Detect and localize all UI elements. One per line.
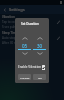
button[interactable]: Decrease	[18, 50, 31, 57]
button[interactable]: Edit	[54, 18, 62, 26]
staticText: 5 sec pulse	[2, 25, 18, 29]
button[interactable]: Edit	[54, 34, 62, 42]
staticText: 30	[37, 43, 43, 49]
staticText: OK	[38, 76, 42, 79]
staticText: Vibration	[2, 15, 15, 19]
staticText: Sleep Timer	[2, 31, 19, 35]
staticText: CANCEL	[20, 76, 30, 79]
button[interactable]: Increase	[33, 35, 46, 42]
staticText: After 30 min	[2, 41, 20, 45]
button[interactable]: Enable Vibration	[15, 63, 49, 71]
staticText: Auto stop	[2, 36, 16, 40]
staticText: Set Duration	[21, 22, 39, 26]
staticText: 05	[22, 43, 28, 49]
button[interactable]: Increase	[18, 35, 31, 42]
button[interactable]: OK	[33, 74, 46, 80]
button[interactable]: Sleep Timer	[0, 31, 64, 45]
button[interactable]: Decrease	[33, 50, 46, 57]
button[interactable]: Vibration	[0, 15, 64, 29]
button[interactable]: Back	[0, 5, 9, 14]
button[interactable]: CANCEL	[18, 74, 31, 80]
staticText: Settings	[9, 7, 25, 12]
staticText: Enable Vibration	[18, 65, 42, 69]
staticText: Tap to configure	[2, 20, 25, 24]
